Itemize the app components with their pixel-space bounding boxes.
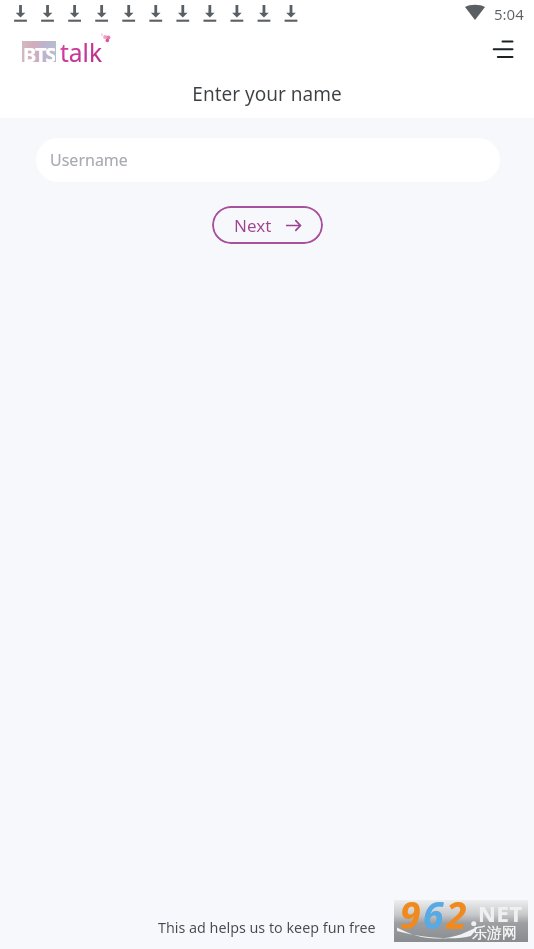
staticText: 9: [400, 889, 421, 931]
button[interactable]: Username: [36, 138, 500, 182]
staticText: BTS: [23, 41, 55, 62]
staticText: NET: [478, 898, 523, 928]
staticText: This ad helps us to keep fun free: [158, 918, 376, 937]
staticText: Enter your name: [0, 81, 534, 107]
staticText: 2: [446, 889, 467, 931]
staticText: .: [470, 897, 478, 934]
staticText: talk: [60, 36, 102, 68]
staticText: 6: [423, 889, 444, 931]
staticText: 5:04: [494, 4, 524, 24]
button[interactable]: Next: [212, 206, 323, 244]
staticText: 乐游网: [472, 924, 517, 943]
staticText: Username: [50, 149, 128, 171]
button[interactable]: Menu: [484, 31, 520, 67]
staticText: Next: [234, 214, 272, 237]
